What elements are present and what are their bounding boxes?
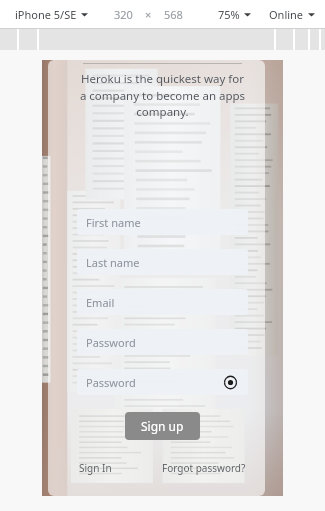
button[interactable]: Password [77, 369, 248, 395]
staticText: First name [86, 215, 141, 230]
button[interactable]: Online [269, 7, 315, 22]
staticText: Sign In [79, 461, 112, 475]
staticText: Password [86, 375, 136, 390]
button[interactable]: iPhone 5/SE [15, 7, 88, 22]
button[interactable]: Show password [221, 373, 239, 391]
staticText: Online [269, 7, 304, 22]
staticText: Last name [86, 255, 140, 270]
staticText: 568 [164, 7, 183, 22]
button[interactable]: First name [77, 209, 248, 235]
button[interactable]: Sign In [77, 459, 114, 477]
button[interactable]: Last name [77, 249, 248, 275]
staticText: Forgot password? [162, 461, 246, 475]
button[interactable]: Password [77, 329, 248, 355]
staticText: 75% [218, 7, 240, 22]
staticText: Password [86, 335, 136, 350]
button[interactable]: Email [77, 289, 248, 315]
button[interactable]: Forgot password? [160, 459, 248, 477]
button[interactable]: 75% [218, 7, 251, 22]
staticText: Heroku is the quickest way for a company… [77, 71, 248, 119]
staticText: iPhone 5/SE [15, 7, 77, 22]
staticText: Email [86, 295, 115, 310]
staticText: Sign up [141, 418, 184, 434]
button[interactable]: Sign up [125, 412, 200, 440]
staticText: × [145, 7, 152, 22]
staticText: 320 [114, 7, 133, 22]
